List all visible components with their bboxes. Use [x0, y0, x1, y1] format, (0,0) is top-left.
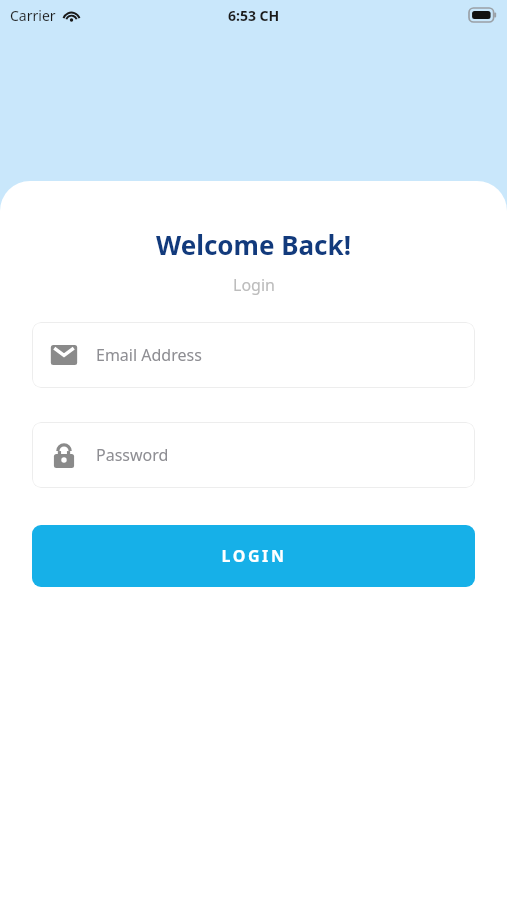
staticText: Welcome Back!	[156, 227, 351, 262]
staticText: Carrier	[10, 6, 56, 25]
button[interactable]: Password	[32, 422, 475, 488]
button[interactable]: Email Address	[32, 322, 475, 388]
staticText: Login	[233, 274, 275, 296]
staticText: LOGIN	[221, 545, 287, 567]
staticText: 6:53 CH	[228, 6, 280, 25]
staticText: Password	[96, 444, 169, 466]
button[interactable]: LOGIN	[32, 525, 475, 587]
staticText: Email Address	[96, 344, 202, 366]
